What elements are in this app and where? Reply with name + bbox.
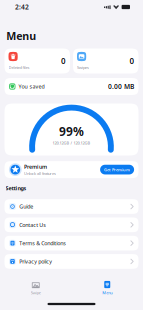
button[interactable]: Swipe: [0, 278, 71, 298]
staticText: 99%: [59, 123, 84, 139]
staticText: 120.12GB / 120.12GB: [52, 140, 90, 145]
button[interactable]: Privacy policy: [4, 254, 138, 269]
staticText: 0.00 MB: [108, 82, 134, 91]
staticText: Privacy policy: [19, 258, 52, 265]
staticText: Deleted files: [8, 65, 29, 70]
staticText: 2:42: [15, 3, 29, 11]
button[interactable]: Guide: [4, 199, 138, 214]
button[interactable]: Premium: [4, 161, 138, 178]
staticText: 0: [61, 56, 66, 66]
button[interactable]: Menu: [71, 278, 143, 298]
staticText: Get Premium: [104, 167, 130, 172]
staticText: Menu: [6, 29, 36, 43]
staticText: Swipe: [31, 290, 41, 295]
staticText: Premium: [24, 163, 47, 170]
staticText: Swipes: [77, 65, 89, 70]
staticText: You saved: [18, 83, 44, 90]
staticText: Guide: [19, 203, 33, 210]
staticText: 0: [129, 56, 134, 66]
staticText: Menu: [102, 290, 112, 295]
staticText: Contact Us: [19, 221, 46, 228]
staticText: Terms & Conditions: [19, 240, 66, 247]
button[interactable]: Terms & Conditions: [4, 236, 138, 250]
staticText: Unlock all features: [24, 171, 56, 176]
staticText: Settings: [5, 185, 26, 192]
button[interactable]: Contact Us: [4, 217, 138, 232]
